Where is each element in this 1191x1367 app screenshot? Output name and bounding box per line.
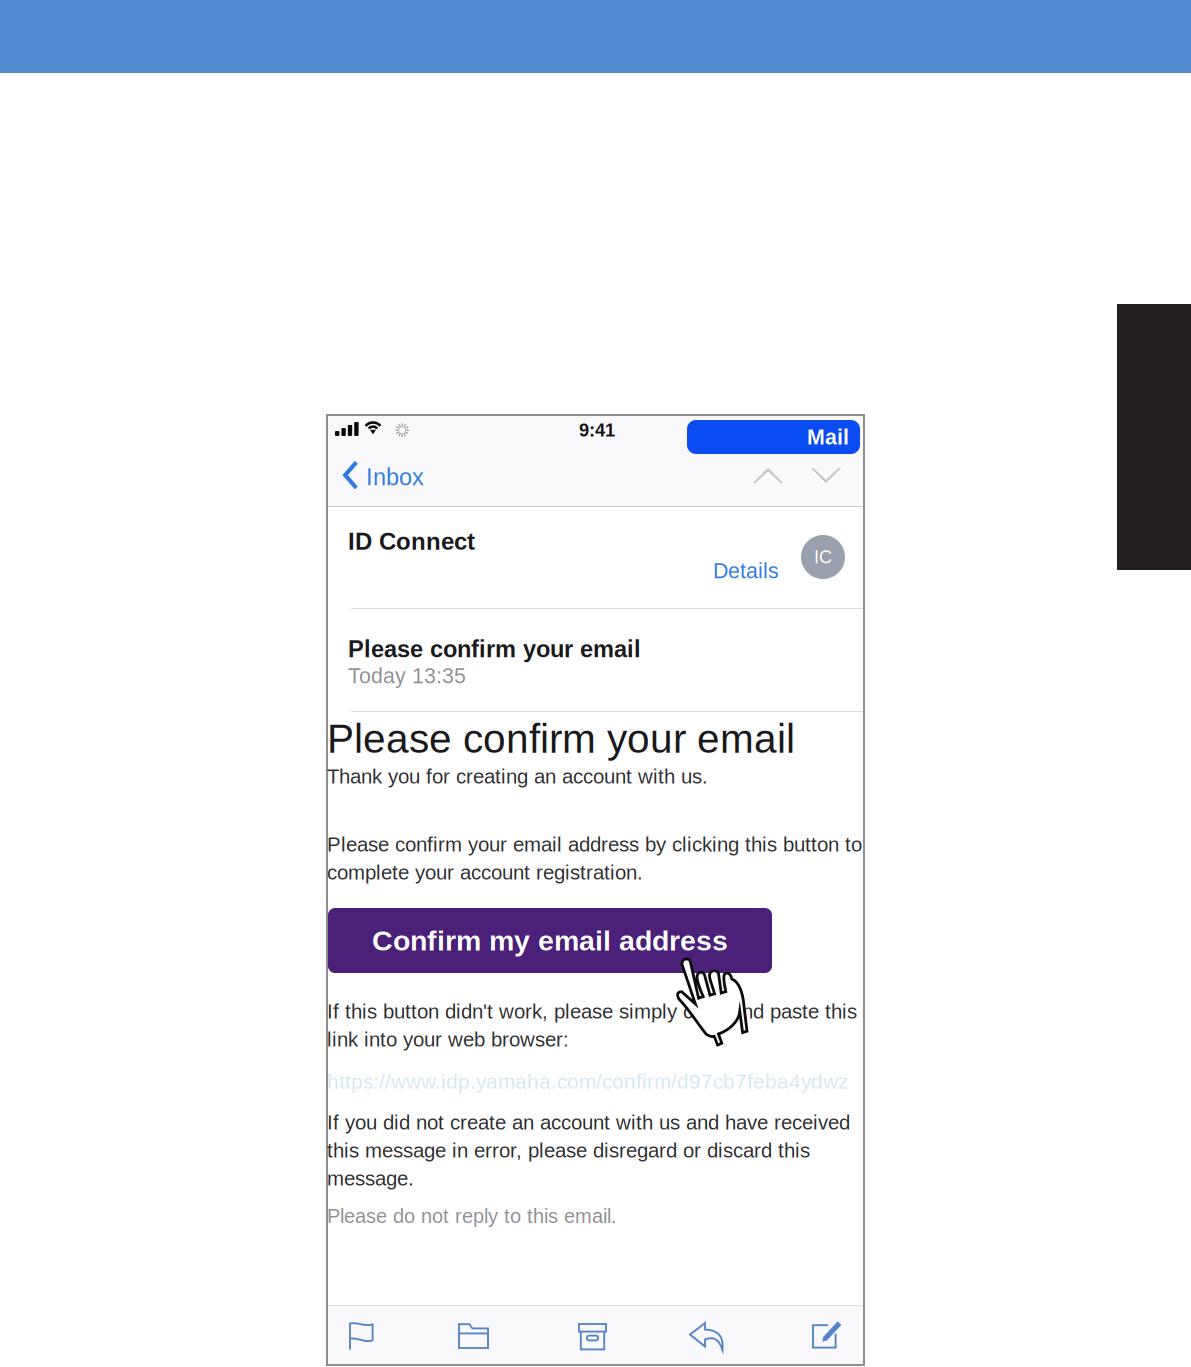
staticText: this message in error, please disregard … — [327, 1139, 810, 1162]
button[interactable]: Inbox — [335, 455, 428, 495]
button[interactable]: Reply — [679, 1312, 734, 1361]
button[interactable]: Next message — [802, 459, 850, 492]
staticText: Today 13:35 — [348, 664, 466, 688]
staticText: Please confirm your email address by cli… — [327, 833, 862, 856]
staticText: Please confirm your email — [348, 636, 641, 662]
staticText: message. — [327, 1167, 414, 1190]
staticText: If you did not create an account with us… — [327, 1111, 850, 1134]
button[interactable]: Compose — [802, 1310, 851, 1359]
staticText: Details — [713, 559, 779, 583]
staticText: Please do not reply to this email. — [327, 1205, 617, 1227]
button[interactable]: Move to folder — [448, 1313, 499, 1359]
button[interactable]: Archive — [568, 1313, 617, 1361]
staticText: 9:41 — [579, 420, 615, 440]
staticText: Thank you for creating an account with u… — [327, 765, 708, 788]
staticText: https://www.idp.yamaha.com/confirm/d97cb… — [327, 1070, 848, 1093]
staticText: IC — [814, 547, 832, 567]
button[interactable]: Previous message — [744, 459, 792, 492]
button[interactable]: Details — [707, 555, 785, 587]
staticText: Confirm my email address — [372, 925, 728, 956]
staticText: Mail — [807, 425, 849, 449]
button[interactable]: Mail — [687, 420, 860, 454]
staticText: Inbox — [366, 464, 424, 490]
staticText: Please confirm your email — [327, 716, 795, 761]
staticText: ID Connect — [348, 528, 475, 555]
button[interactable]: Sender ID Connect — [801, 535, 845, 579]
staticText: If this button didn't work, please simpl… — [327, 1000, 857, 1023]
staticText: link into your web browser: — [327, 1028, 569, 1051]
staticText: complete your account registration. — [327, 861, 643, 884]
button[interactable]: Confirm my email address — [328, 908, 772, 973]
button[interactable]: Flag — [339, 1312, 384, 1361]
